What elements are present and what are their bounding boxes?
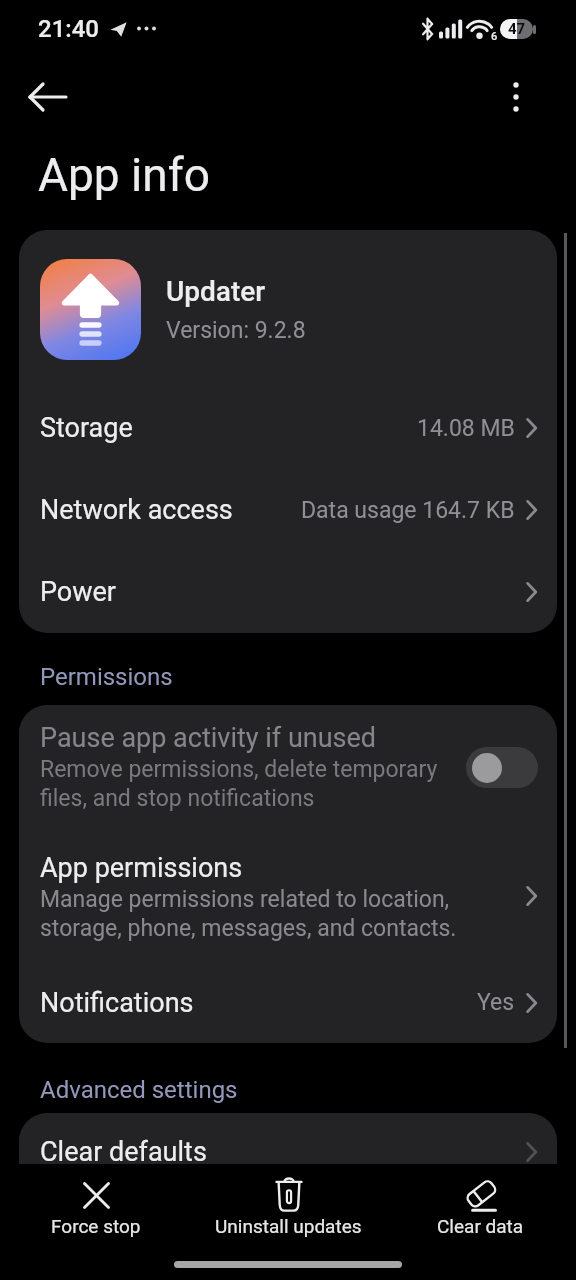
button[interactable]: Power xyxy=(19,551,557,633)
staticText: 6 xyxy=(491,30,498,43)
staticText: Uninstall updates xyxy=(215,1215,362,1237)
staticText: Permissions xyxy=(40,663,173,691)
staticText: Power xyxy=(40,576,117,608)
staticText: Version: 9.2.8 xyxy=(166,317,306,344)
staticText: App info xyxy=(38,148,210,202)
button[interactable]: Notifications xyxy=(19,962,557,1043)
button[interactable]: Pause app activity if unused xyxy=(19,705,557,830)
button[interactable]: Clear defaults xyxy=(19,1113,557,1191)
staticText: Clear data xyxy=(437,1215,524,1237)
staticText: Pause app activity if unused xyxy=(40,722,377,754)
staticText: Updater xyxy=(166,275,266,308)
staticText: Network access xyxy=(40,494,233,526)
staticText: Clear defaults xyxy=(40,1136,207,1168)
staticText: 14.08 MB xyxy=(417,415,515,442)
staticText: Force stop xyxy=(51,1215,141,1237)
button[interactable]: Force stop xyxy=(51,1177,141,1237)
button[interactable]: Storage xyxy=(19,387,557,469)
staticText: Remove permissions, delete temporary fil… xyxy=(40,756,438,811)
button[interactable]: App permissions xyxy=(19,830,557,962)
staticText: Data usage 164.7 KB xyxy=(301,497,515,524)
staticText: Manage permissions related to location, … xyxy=(40,886,457,941)
staticText: Advanced settings xyxy=(40,1076,238,1104)
button[interactable]: Clear data xyxy=(437,1177,524,1237)
staticText: App permissions xyxy=(40,852,243,884)
staticText: Yes xyxy=(477,989,515,1016)
staticText: Storage xyxy=(40,412,133,444)
button[interactable]: Network access xyxy=(19,469,557,551)
button[interactable] xyxy=(494,75,538,119)
button[interactable]: Updater xyxy=(19,230,557,387)
staticText: 21:40 xyxy=(38,15,99,43)
staticText: Notifications xyxy=(40,987,194,1019)
button[interactable] xyxy=(20,69,76,125)
button[interactable]: Uninstall updates xyxy=(215,1177,362,1237)
button[interactable] xyxy=(466,747,538,788)
staticText: 47 xyxy=(508,20,526,38)
